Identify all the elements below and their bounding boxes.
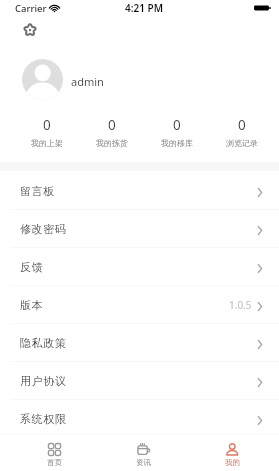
staticText: 版本 — [20, 298, 44, 312]
button[interactable]: 留言板 — [0, 172, 279, 210]
staticText: 修改密码 — [20, 222, 67, 236]
staticText: 用户协议 — [20, 374, 67, 388]
staticText: 留言板 — [20, 184, 55, 198]
button[interactable]: 版本 — [0, 286, 279, 324]
button[interactable]: 隐私政策 — [0, 324, 279, 362]
button[interactable]: 0 — [15, 116, 79, 152]
button[interactable]: 反馈 — [0, 248, 279, 286]
staticText: 我的上架 — [31, 138, 63, 148]
button[interactable]: 首页 — [10, 434, 99, 471]
button[interactable]: Settings — [24, 24, 36, 36]
staticText: 我的 — [225, 458, 240, 467]
button[interactable]: 系统权限 — [0, 400, 279, 438]
staticText: admin — [71, 74, 104, 89]
staticText: 反馈 — [20, 260, 44, 274]
staticText: 4:21 PM — [125, 1, 163, 15]
button[interactable]: 我的 — [188, 434, 277, 471]
staticText: 1.0.5 — [229, 298, 252, 312]
staticText: 隐私政策 — [20, 336, 67, 350]
staticText: 我的拣货 — [96, 138, 128, 148]
button[interactable]: 0 — [209, 116, 274, 152]
staticText: Carrier — [15, 2, 47, 15]
staticText: 浏览记录 — [226, 138, 258, 148]
staticText: 0 — [173, 116, 181, 134]
staticText: 资讯 — [136, 458, 151, 467]
button[interactable]: 资讯 — [99, 434, 188, 471]
button[interactable]: 0 — [144, 116, 209, 152]
staticText: 0 — [108, 116, 116, 134]
button[interactable]: 用户协议 — [0, 362, 279, 400]
staticText: 系统权限 — [20, 412, 67, 426]
button[interactable]: 0 — [79, 116, 144, 152]
staticText: 首页 — [47, 458, 62, 467]
staticText: 0 — [43, 116, 51, 134]
staticText: 0 — [238, 116, 246, 134]
button[interactable]: 修改密码 — [0, 210, 279, 248]
staticText: 我的移库 — [161, 138, 193, 148]
